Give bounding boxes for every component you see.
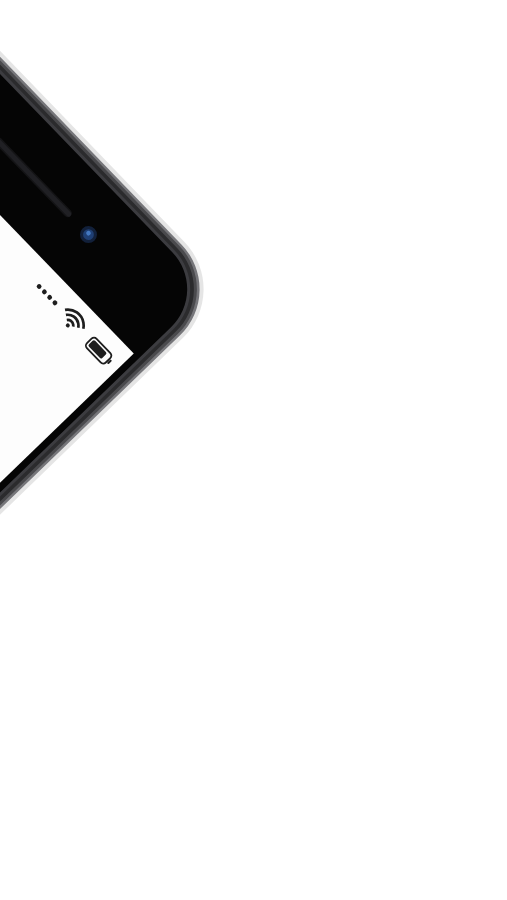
button[interactable] (0, 152, 50, 502)
other: Wi-Fi, signal and battery status (36, 287, 125, 378)
